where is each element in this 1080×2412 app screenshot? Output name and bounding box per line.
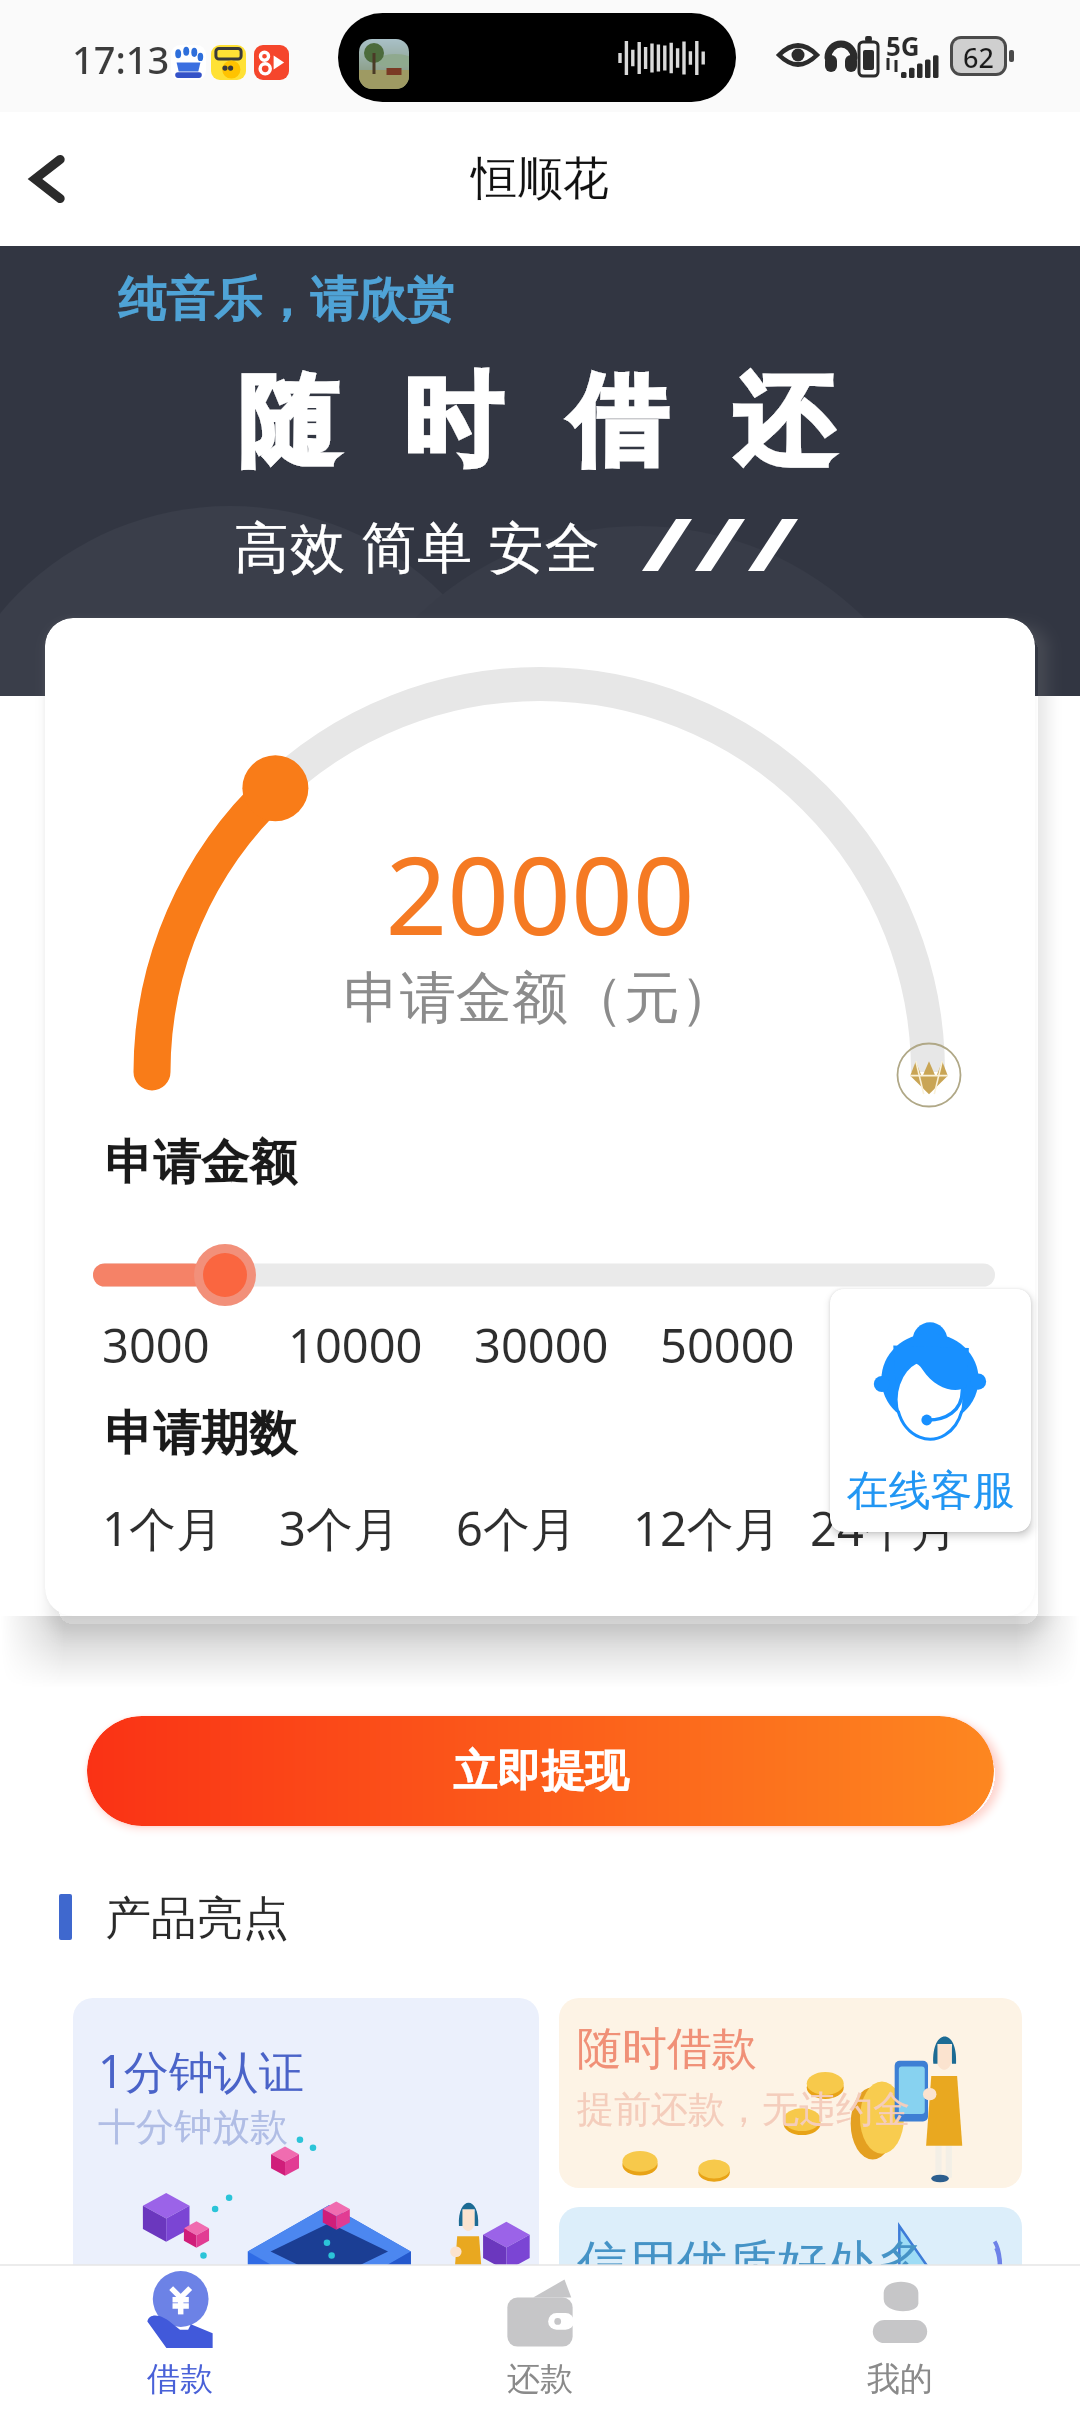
- staticText: 50000: [660, 1313, 846, 1377]
- button[interactable]: 随时借款: [559, 1998, 1022, 2188]
- button[interactable]: 信用优质好处多: [559, 2207, 1022, 2397]
- staticText: 30000: [474, 1313, 660, 1377]
- button[interactable]: 24个月: [810, 1496, 987, 1560]
- staticText: 申请金额（元）: [45, 963, 1035, 1034]
- staticText: 申请期数: [105, 1404, 297, 1464]
- button[interactable]: 借款: [0, 2265, 360, 2412]
- button[interactable]: 1分钟认证: [73, 1998, 539, 2320]
- staticText: 3000: [102, 1313, 288, 1377]
- staticText: 随时借款: [577, 2021, 757, 2078]
- staticText: 提前还款，无违约金: [577, 2086, 910, 2133]
- staticText: 十分钟放款: [98, 2103, 288, 2151]
- button[interactable]: 还款: [360, 2265, 720, 2412]
- button[interactable]: 在线客服: [830, 1289, 1031, 1532]
- staticText: 立即提现: [453, 1744, 629, 1799]
- staticText: 我的: [867, 2358, 933, 2400]
- staticText: 17:13: [72, 33, 170, 85]
- staticText: 5G: [886, 28, 920, 63]
- staticText: 信用优质好处多: [577, 2233, 927, 2296]
- button[interactable]: 1个月: [102, 1496, 279, 1560]
- button[interactable]: 12个月: [633, 1496, 810, 1560]
- button[interactable]: 6个月: [456, 1496, 633, 1560]
- staticText: 借款: [147, 2358, 213, 2400]
- staticText: 产品亮点: [105, 1890, 289, 1948]
- button[interactable]: 立即提现: [87, 1716, 994, 1826]
- staticText: 随时借还: [205, 360, 865, 485]
- staticText: 申请金额: [105, 1133, 297, 1193]
- staticText: 纯音乐，请欣赏: [118, 270, 454, 330]
- button[interactable]: 3个月: [279, 1496, 456, 1560]
- staticText: 62: [963, 39, 994, 73]
- staticText: 10000: [288, 1313, 474, 1377]
- button[interactable]: Back: [14, 144, 84, 214]
- staticText: 还款: [507, 2358, 573, 2400]
- staticText: 高效 简单 安全: [234, 508, 601, 583]
- staticText: 20000: [45, 820, 1035, 967]
- staticText: 在线客服: [830, 1465, 1031, 1518]
- staticText: 恒顺花: [471, 150, 609, 208]
- staticText: 1分钟认证: [98, 2040, 304, 2101]
- button[interactable]: 我的: [720, 2265, 1080, 2412]
